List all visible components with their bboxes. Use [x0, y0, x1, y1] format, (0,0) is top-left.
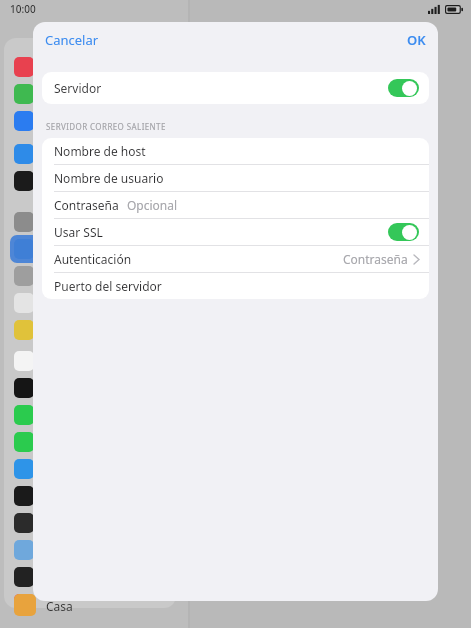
staticText: Casa — [46, 598, 73, 614]
button[interactable]: Activado — [388, 223, 419, 241]
staticText: 10:00 — [10, 2, 36, 16]
button[interactable]: Contraseña — [42, 192, 429, 218]
staticText: Cuenta — [310, 20, 351, 36]
staticText: Contraseña — [343, 251, 408, 267]
button[interactable]: Puerto del servidor — [42, 273, 429, 299]
other: Open Autenticación — [414, 255, 419, 264]
staticText: OK — [407, 31, 426, 49]
staticText: Atrás — [210, 20, 237, 35]
staticText: Contraseña — [54, 197, 119, 213]
button[interactable]: Usar SSL — [42, 219, 429, 245]
staticText: Ajustes — [72, 20, 113, 36]
staticText: Opcional — [127, 197, 178, 213]
button[interactable]: Servidor — [42, 72, 429, 104]
staticText: Puerto del servidor — [54, 278, 162, 294]
staticText: Autenticación — [54, 251, 132, 267]
button[interactable]: Autenticación — [42, 246, 429, 272]
button[interactable]: OK — [395, 25, 438, 55]
staticText: Nombre de host — [54, 143, 146, 159]
staticText: Usar SSL — [54, 224, 103, 240]
button[interactable]: Nombre de host — [42, 138, 429, 164]
staticText: Servidor — [54, 80, 102, 96]
staticText: Cancelar — [45, 31, 99, 49]
button[interactable]: Nombre de usuario — [42, 165, 429, 191]
staticText: Nombre de usuario — [54, 170, 164, 186]
button[interactable]: Activado — [388, 79, 419, 97]
button[interactable]: Cancelar — [33, 25, 111, 55]
staticText: SERVIDOR CORREO SALIENTE — [46, 121, 166, 132]
